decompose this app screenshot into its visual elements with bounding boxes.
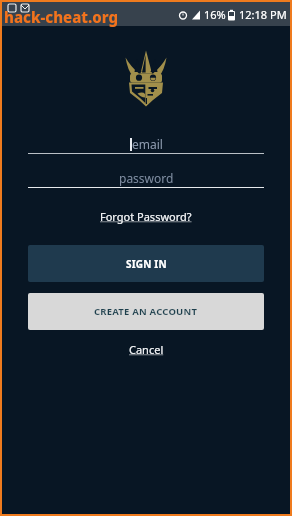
button[interactable]: Forgot Password? — [100, 209, 192, 224]
staticText: 12:18 PM — [239, 7, 287, 22]
button[interactable]: password — [28, 167, 264, 189]
button[interactable]: email — [28, 133, 264, 155]
staticText: CREATE AN ACCOUNT — [94, 305, 198, 318]
staticText: email — [132, 136, 163, 152]
staticText: Forgot Password? — [100, 209, 192, 224]
staticText: hack-cheat.org — [4, 7, 119, 27]
staticText: SIGN IN — [126, 257, 167, 271]
button[interactable]: SIGN IN — [28, 245, 264, 282]
button[interactable]: Cancel — [129, 342, 164, 357]
staticText: password — [119, 170, 174, 186]
button[interactable]: CREATE AN ACCOUNT — [28, 293, 264, 330]
staticText: 16% — [204, 7, 226, 22]
staticText: Cancel — [129, 342, 164, 357]
